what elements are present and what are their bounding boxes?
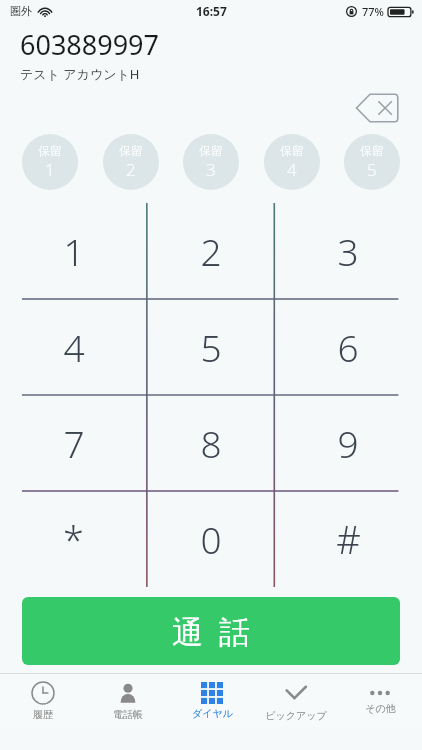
- staticText: *: [63, 513, 84, 565]
- button[interactable]: #: [274, 491, 422, 587]
- button[interactable]: ダイヤル: [170, 674, 254, 727]
- staticText: 保留: [280, 143, 304, 158]
- staticText: 2: [126, 158, 136, 181]
- button[interactable]: 通 話: [22, 597, 400, 665]
- staticText: 保留: [199, 143, 223, 158]
- button[interactable]: 1: [0, 203, 147, 299]
- button[interactable]: *: [0, 491, 147, 587]
- button[interactable]: 保留: [183, 134, 239, 190]
- staticText: ピックアップ: [265, 709, 327, 722]
- staticText: 保留: [38, 143, 62, 158]
- button[interactable]: Backspace: [354, 91, 400, 125]
- button[interactable]: 保留: [344, 134, 400, 190]
- staticText: 6: [337, 322, 359, 372]
- staticText: その他: [365, 702, 396, 715]
- staticText: 1: [45, 158, 55, 181]
- staticText: 4: [287, 158, 297, 181]
- staticText: 通 話: [172, 610, 251, 652]
- button[interactable]: ピックアップ: [254, 674, 338, 727]
- button[interactable]: 履歴: [0, 674, 85, 727]
- staticText: #: [336, 513, 361, 565]
- button[interactable]: 0: [147, 491, 274, 587]
- button[interactable]: 3: [274, 203, 422, 299]
- button[interactable]: 5: [147, 299, 274, 395]
- staticText: 保留: [360, 143, 384, 158]
- staticText: 保留: [119, 143, 143, 158]
- button[interactable]: 7: [0, 395, 147, 491]
- staticText: 0: [200, 514, 222, 564]
- button[interactable]: その他: [338, 674, 422, 727]
- staticText: 電話帳: [113, 708, 143, 721]
- staticText: テスト アカウントH: [20, 65, 140, 83]
- staticText: 7: [63, 418, 85, 468]
- button[interactable]: 電話帳: [85, 674, 170, 727]
- button[interactable]: 保留: [264, 134, 320, 190]
- button[interactable]: 8: [147, 395, 274, 491]
- staticText: 5: [367, 158, 377, 181]
- staticText: 2: [200, 226, 222, 276]
- staticText: ダイヤル: [192, 707, 233, 720]
- staticText: 5: [200, 322, 222, 372]
- staticText: 3: [206, 158, 216, 181]
- button[interactable]: 9: [274, 395, 422, 491]
- staticText: 8: [200, 418, 222, 468]
- staticText: 3: [337, 226, 359, 276]
- button[interactable]: 保留: [103, 134, 159, 190]
- staticText: 77%: [362, 4, 384, 19]
- staticText: 圏外: [10, 4, 32, 18]
- staticText: 9: [337, 418, 359, 468]
- button[interactable]: 4: [0, 299, 147, 395]
- button[interactable]: 保留: [22, 134, 78, 190]
- button[interactable]: 6: [274, 299, 422, 395]
- staticText: 603889997: [20, 26, 159, 63]
- button[interactable]: 2: [147, 203, 274, 299]
- staticText: 16:57: [196, 3, 227, 19]
- staticText: 履歴: [33, 708, 53, 721]
- staticText: 4: [63, 322, 85, 372]
- staticText: 1: [63, 226, 85, 276]
